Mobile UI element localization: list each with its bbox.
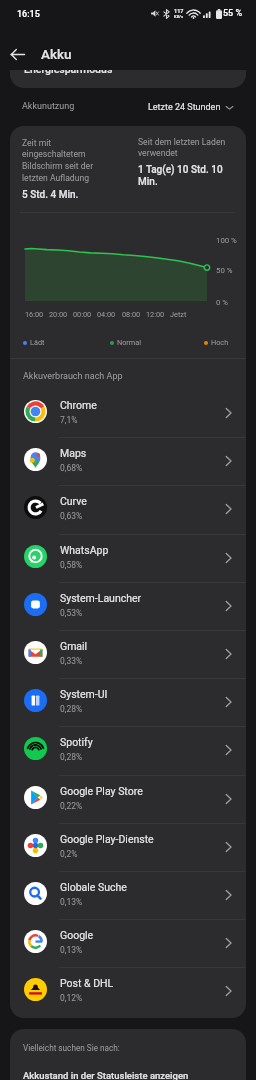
staticText: 0,28% — [60, 704, 83, 714]
button[interactable]: Curve — [10, 485, 246, 533]
staticText: 55 % — [223, 8, 243, 19]
staticText: 0,13% — [60, 897, 83, 907]
button[interactable]: Chrome — [10, 389, 246, 437]
staticText: Spotify — [60, 736, 93, 748]
staticText: Curve — [60, 495, 87, 507]
staticText: 0 % — [216, 298, 229, 307]
staticText: Akkuverbrauch nach App — [23, 371, 123, 382]
button[interactable]: Google — [10, 919, 246, 967]
staticText: 117 — [174, 8, 184, 14]
staticText: 04:00 — [97, 310, 116, 319]
staticText: Jetzt — [170, 310, 187, 319]
button[interactable]: System-UI — [10, 678, 246, 726]
staticText: Maps — [60, 447, 87, 459]
staticText: Google — [60, 929, 94, 941]
staticText: 7,1% — [60, 415, 78, 425]
staticText: Akkunutzung — [22, 101, 75, 112]
staticText: 100 % — [216, 236, 237, 245]
staticText: 08:00 — [122, 310, 141, 319]
button[interactable]: Energiesparmodus — [10, 40, 246, 88]
staticText: 0,12% — [60, 993, 83, 1003]
button[interactable]: Gmail — [10, 630, 246, 678]
button[interactable]: Zurück — [5, 42, 29, 66]
button[interactable]: WhatsApp — [10, 534, 246, 582]
staticText: Akkustand in der Statusleiste anzeigen — [23, 1070, 189, 1080]
staticText: 12:00 — [146, 310, 165, 319]
staticText: Akku — [41, 46, 72, 62]
staticText: 50 % — [216, 266, 233, 275]
staticText: 0,58% — [60, 560, 83, 570]
button[interactable]: Maps — [10, 437, 246, 485]
staticText: 0,22% — [60, 801, 83, 811]
staticText: 00:00 — [73, 310, 92, 319]
staticText: 5 Std. 4 Min. — [22, 189, 79, 201]
button[interactable]: Spotify — [10, 726, 246, 774]
staticText: WhatsApp — [60, 544, 109, 556]
button[interactable]: Globale Suche — [10, 871, 246, 919]
button[interactable]: Vielleicht suchen Sie nach: — [10, 1029, 246, 1080]
staticText: System-Launcher — [60, 592, 142, 604]
staticText: Hoch — [211, 338, 229, 347]
staticText: System-UI — [60, 688, 108, 700]
staticText: Google Play-Dienste — [60, 833, 154, 845]
staticText: Post & DHL — [60, 977, 114, 989]
staticText: Letzte 24 Stunden — [148, 102, 221, 113]
staticText: Chrome — [60, 399, 97, 411]
staticText: Globale Suche — [60, 881, 127, 893]
staticText: 20:00 — [49, 310, 68, 319]
staticText: 0,28% — [60, 752, 83, 762]
button[interactable]: Letzte 24 Stunden — [148, 102, 234, 113]
staticText: Lädt — [30, 338, 45, 347]
staticText: Gmail — [60, 640, 88, 652]
staticText: Seit dem letzten Laden verwendet — [138, 137, 233, 158]
staticText: Vielleicht suchen Sie nach: — [23, 1043, 120, 1053]
staticText: 16:00 — [25, 310, 44, 319]
staticText: 0,53% — [60, 608, 83, 618]
button[interactable]: System-Launcher — [10, 582, 246, 630]
staticText: 0,13% — [60, 945, 83, 955]
staticText: 0,2% — [60, 849, 78, 859]
staticText: Normal — [117, 338, 141, 347]
button[interactable]: Google Play-Dienste — [10, 823, 246, 871]
button[interactable]: Google Play Store — [10, 775, 246, 823]
button[interactable]: Post & DHL — [10, 967, 246, 1015]
staticText: 0,68% — [60, 463, 83, 473]
staticText: 0,33% — [60, 656, 83, 666]
staticText: Zeit mit eingeschaltetem Bildschirm seit… — [22, 138, 95, 183]
staticText: Energiesparmodus — [24, 63, 113, 75]
staticText: 1 Tag(e) 10 Std. 10 Min. — [138, 164, 230, 188]
staticText: 0,63% — [60, 511, 83, 521]
staticText: KB/s — [174, 14, 184, 19]
staticText: 16:15 — [17, 9, 40, 20]
staticText: Google Play Store — [60, 785, 143, 797]
